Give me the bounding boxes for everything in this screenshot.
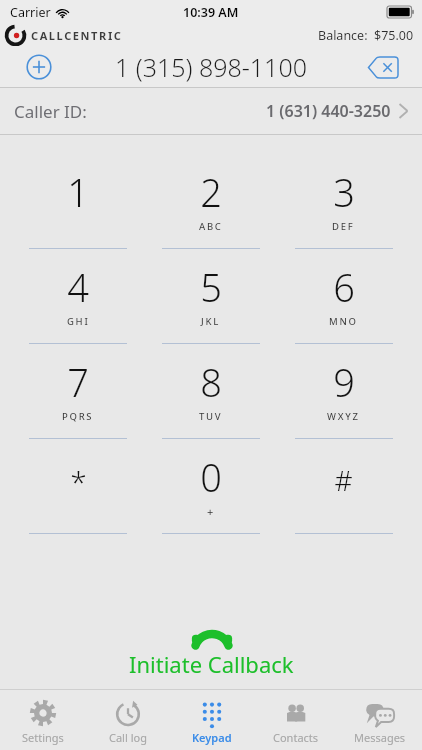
button[interactable]: 3 xyxy=(277,162,410,257)
button[interactable]: 1 xyxy=(12,162,144,257)
staticText: PQRS xyxy=(62,410,94,423)
staticText: 8 xyxy=(200,356,222,408)
button[interactable]: Messages xyxy=(338,690,422,750)
staticText: 3 xyxy=(333,166,355,218)
staticText: Contacts xyxy=(273,730,319,745)
staticText: 9 xyxy=(333,356,355,408)
staticText: JKL xyxy=(201,315,220,328)
staticText: MNO xyxy=(329,315,358,328)
staticText: Initiate Callback xyxy=(129,649,294,679)
staticText: Carrier xyxy=(10,4,51,21)
staticText: Settings xyxy=(22,730,64,745)
button[interactable]: Initiate Callback xyxy=(129,628,294,679)
button[interactable]: 7 xyxy=(12,352,144,447)
button[interactable]: Add contact xyxy=(24,52,54,82)
button[interactable]: 9 xyxy=(277,352,410,447)
button[interactable]: 5 xyxy=(144,257,277,352)
button[interactable]: Contacts xyxy=(254,690,338,750)
button[interactable]: 4 xyxy=(12,257,144,352)
button[interactable]: Keypad xyxy=(170,690,254,750)
staticText: ABC xyxy=(199,220,223,233)
staticText: 6 xyxy=(333,261,355,313)
staticText: WXYZ xyxy=(327,410,360,423)
staticText: 0 xyxy=(200,451,222,503)
button[interactable]: 6 xyxy=(277,257,410,352)
staticText: * xyxy=(70,461,87,502)
staticText: Call log xyxy=(109,730,147,745)
button[interactable]: 8 xyxy=(144,352,277,447)
button[interactable]: Caller ID: xyxy=(0,88,422,134)
button[interactable]: Backspace xyxy=(364,53,400,81)
staticText: 7 xyxy=(67,356,89,408)
staticText: Messages xyxy=(354,730,406,745)
button[interactable]: Settings xyxy=(0,690,85,750)
staticText: # xyxy=(334,461,353,499)
staticText: 10:39 AM xyxy=(183,4,239,21)
button[interactable]: * xyxy=(12,447,144,542)
staticText: TUV xyxy=(199,410,223,423)
button[interactable]: Call log xyxy=(85,690,170,750)
staticText: 1 (315) 898-1100 xyxy=(115,50,307,84)
staticText: 2 xyxy=(200,166,222,218)
button[interactable]: # xyxy=(277,447,410,542)
staticText: GHI xyxy=(67,315,90,328)
staticText: CALLCENTRIC xyxy=(31,28,123,43)
staticText: Caller ID: xyxy=(14,100,87,123)
staticText: DEF xyxy=(332,220,355,233)
staticText: + xyxy=(207,504,214,519)
button[interactable]: 0 xyxy=(144,447,277,542)
staticText: 1 (631) 440-3250 xyxy=(266,100,391,122)
staticText: 1 xyxy=(67,166,89,218)
staticText: 4 xyxy=(67,261,89,313)
button[interactable]: 2 xyxy=(144,162,277,257)
staticText: Keypad xyxy=(192,730,232,745)
staticText: Balance: $75.00 xyxy=(318,27,414,44)
staticText: 5 xyxy=(200,261,222,313)
